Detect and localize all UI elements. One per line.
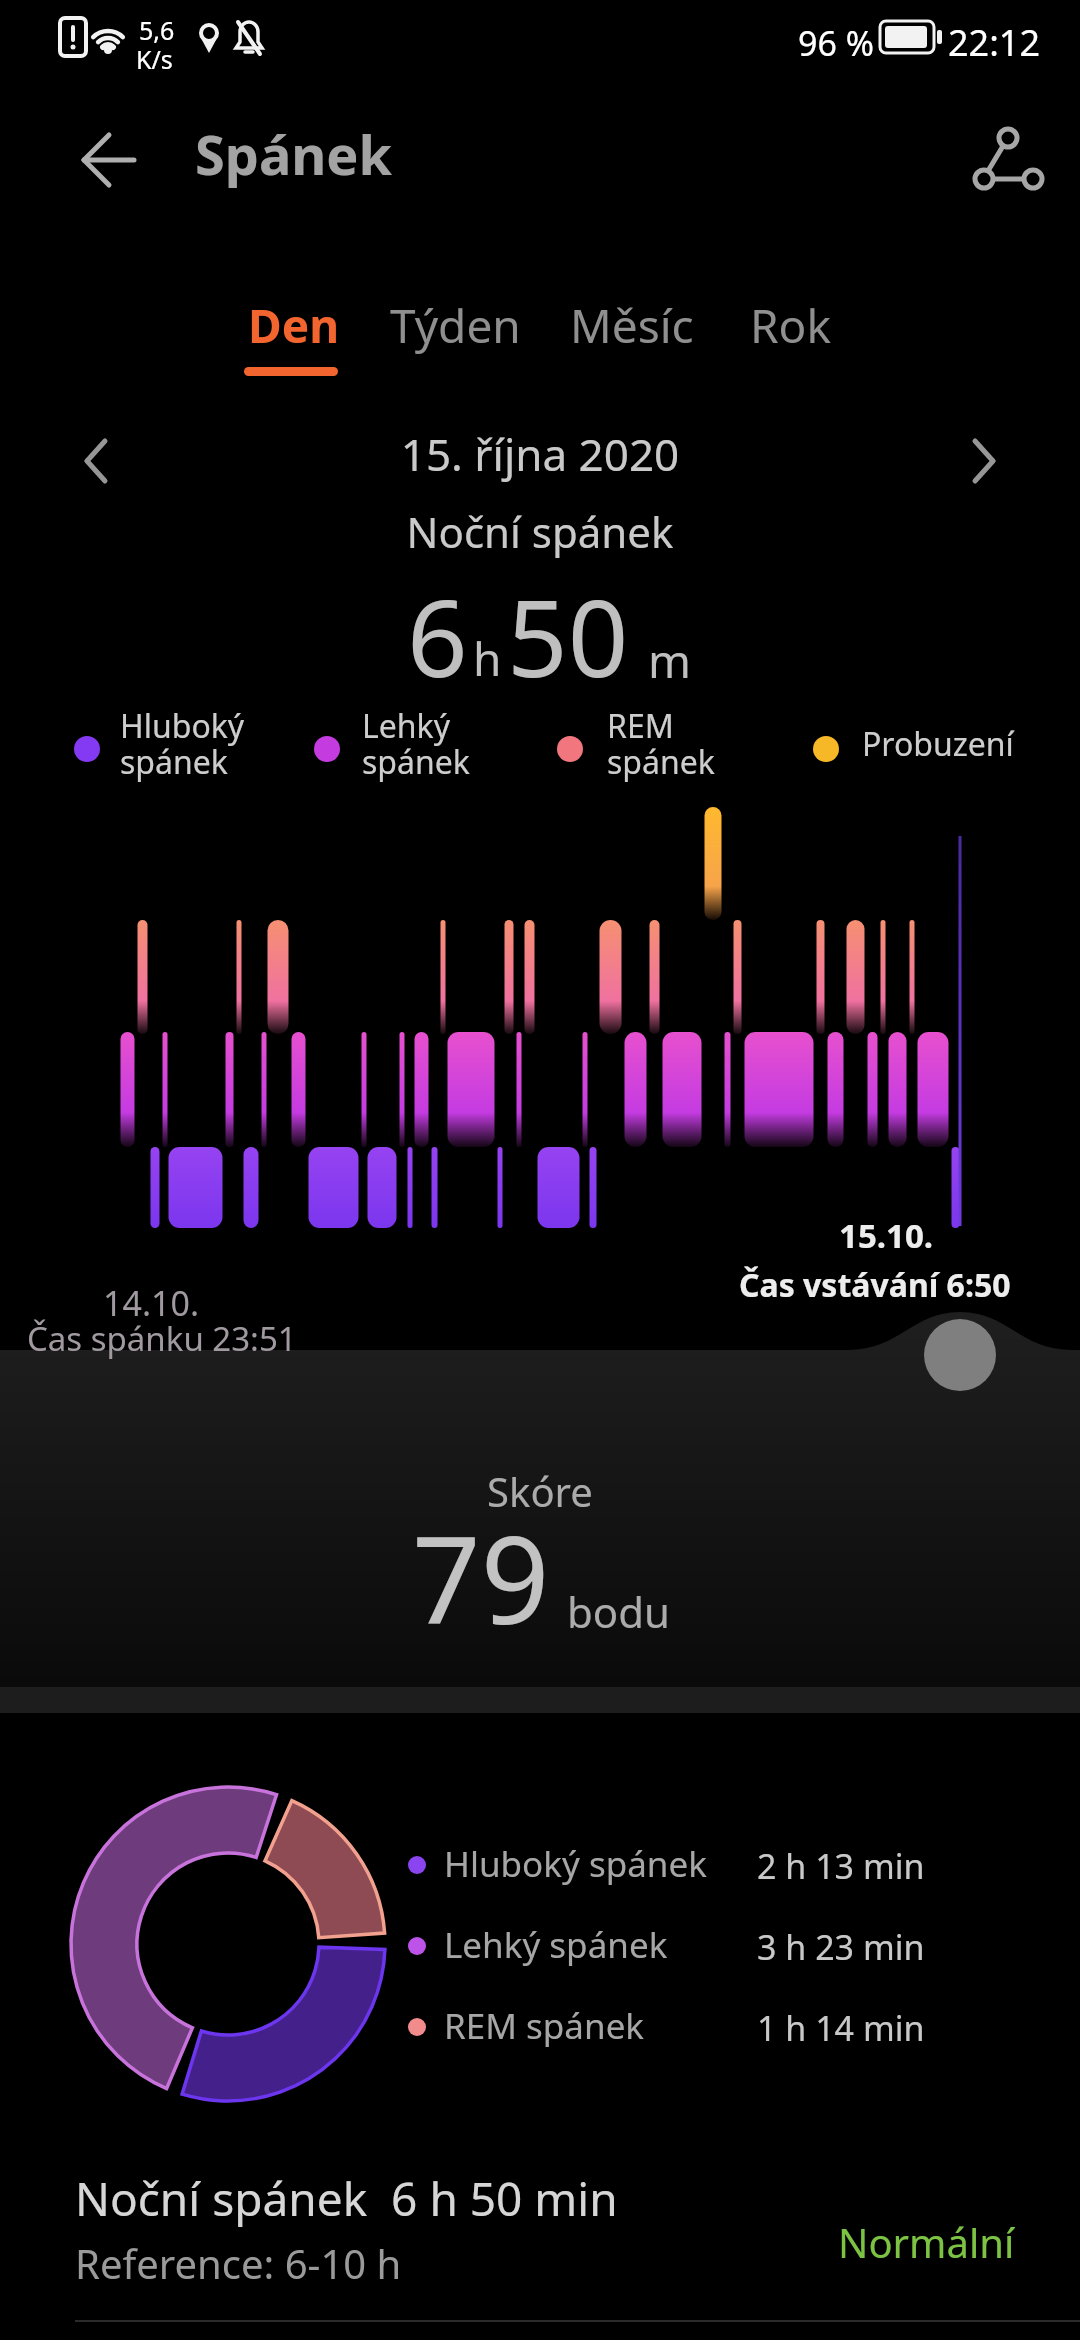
staticText: Normální [838,2215,1015,2269]
staticText: bodu [567,1583,671,1640]
button[interactable] [960,115,1055,205]
staticText: 22:12 [948,18,1041,67]
staticText: Skóre [0,1464,1080,1518]
staticText: Čas vstávání 6:50 [739,1263,1011,1307]
staticText: Hluboký [120,704,245,748]
staticText: Měsíc [570,294,694,357]
staticText: h [473,627,502,690]
button[interactable]: Rok [735,286,855,371]
staticText: 6 [407,564,468,708]
staticText: 1 h 14 min [757,2005,925,2051]
staticText: Probuzení [862,722,1014,766]
staticText: Noční spánek 6 h 50 min [75,2167,618,2230]
staticText: 15.10. [839,1213,934,1258]
button[interactable] [70,430,130,492]
staticText: spánek [607,740,715,784]
button[interactable] [40,2170,1040,2300]
staticText: 14.10. [103,1280,200,1326]
staticText: Čas spánku 23:51 [27,1316,297,1361]
button[interactable]: Měsíc [555,286,710,371]
button[interactable] [60,125,150,195]
staticText: 2 h 13 min [757,1843,925,1889]
staticText: 50 [507,564,629,708]
staticText: REM [607,704,674,748]
staticText: Hluboký spánek [444,1840,707,1888]
staticText: Rok [750,294,832,357]
staticText: 96 % [798,20,874,66]
staticText: Lehký [362,704,451,748]
button[interactable]: Týden [375,286,530,371]
button[interactable] [950,430,1010,492]
staticText: Spánek [195,117,393,191]
staticText: m [648,629,692,692]
staticText: spánek [120,740,228,784]
staticText: Reference: 6-10 h [75,2236,402,2290]
staticText: Lehký spánek [444,1921,668,1969]
staticText: 79 [412,1496,550,1659]
staticText: Noční spánek [0,503,1080,560]
staticText: 15. října 2020 [0,424,1080,484]
staticText: K/s [136,42,173,76]
staticText: spánek [362,740,470,784]
staticText: Týden [390,294,521,357]
staticText: REM spánek [444,2002,645,2050]
staticText: Den [248,294,340,357]
staticText: 3 h 23 min [757,1924,925,1970]
button[interactable]: Den [230,286,355,371]
staticText: 5,6 [139,13,175,47]
